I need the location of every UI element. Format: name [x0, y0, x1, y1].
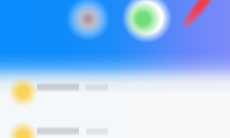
button[interactable] [0, 71, 230, 113]
button[interactable] [0, 115, 230, 138]
